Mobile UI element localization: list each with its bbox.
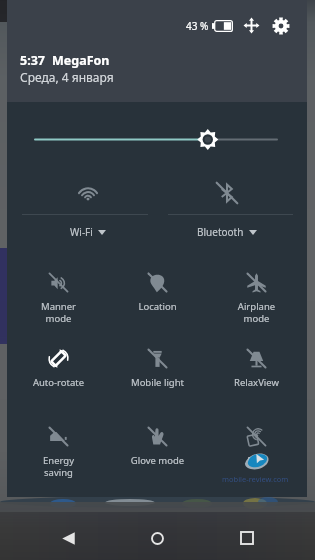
staticText: RelaxView [209, 376, 304, 389]
button[interactable]: Energy saving [11, 423, 106, 485]
button[interactable]: Airplane mode [209, 269, 304, 331]
button[interactable]: Brightness [20, 126, 295, 153]
button[interactable]: Manner mode [11, 269, 106, 331]
staticText: NFC [209, 454, 304, 467]
staticText: Airplane mode [209, 300, 304, 325]
staticText: Glove mode [110, 454, 205, 467]
staticText: Среда, 4 января [20, 69, 114, 85]
staticText: Auto-rotate [11, 376, 106, 389]
button[interactable]: Settings [271, 16, 291, 36]
button[interactable]: Auto-rotate [11, 345, 106, 407]
button[interactable]: Bluetooth [165, 172, 296, 244]
staticText: Manner mode [11, 300, 106, 325]
button[interactable]: Wi-Fi [19, 172, 151, 244]
staticText: 5:37 [20, 52, 45, 69]
staticText: MegaFon [52, 52, 110, 69]
button[interactable]: RelaxView [209, 345, 304, 407]
staticText: Mobile light [110, 376, 205, 389]
button[interactable]: Recent apps [223, 514, 271, 560]
button[interactable]: Home [133, 514, 181, 560]
staticText: Energy saving [11, 454, 106, 479]
staticText: Wi-Fi [70, 225, 93, 239]
staticText: Location [110, 300, 205, 313]
button[interactable]: Location [110, 269, 205, 331]
button[interactable]: Back [44, 514, 92, 560]
button[interactable]: Mobile light [110, 345, 205, 407]
button[interactable]: Move panel [242, 16, 261, 35]
staticText: 43 % [186, 19, 209, 33]
staticText: Bluetooth [197, 225, 244, 239]
button[interactable]: Glove mode [110, 423, 205, 485]
staticText: mobile-review.com [222, 474, 289, 484]
button[interactable]: NFC [209, 423, 304, 485]
